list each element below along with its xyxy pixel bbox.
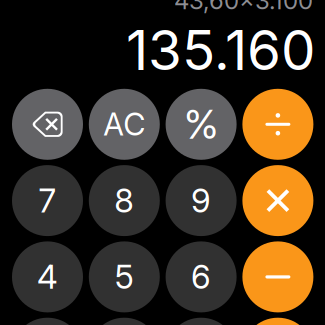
button[interactable]: Subtract	[242, 241, 313, 312]
staticText: AC	[103, 106, 145, 143]
button[interactable]: 1	[12, 318, 83, 325]
staticText: 5	[115, 257, 134, 297]
button[interactable]: 5	[89, 241, 160, 312]
button[interactable]: %	[166, 89, 237, 160]
button[interactable]: Divide	[242, 89, 313, 160]
button[interactable]: 8	[89, 165, 160, 236]
button[interactable]: 2	[89, 318, 160, 325]
button[interactable]: Multiply	[242, 165, 313, 236]
button[interactable]: 6	[166, 241, 237, 312]
button[interactable]: Add	[242, 318, 313, 325]
button[interactable]: 9	[166, 165, 237, 236]
button[interactable]: AC	[89, 89, 160, 160]
staticText: 8	[114, 181, 134, 220]
button[interactable]: Delete	[12, 89, 83, 160]
staticText: 7	[38, 181, 56, 220]
button[interactable]: 3	[166, 318, 237, 325]
button[interactable]: 4	[12, 241, 83, 312]
staticText: 4	[37, 257, 58, 297]
button[interactable]: 7	[12, 165, 83, 236]
staticText: 6	[191, 257, 211, 297]
staticText: 135.160	[126, 17, 315, 83]
staticText: %	[184, 100, 218, 148]
staticText: 43,60×3.100	[174, 0, 313, 15]
staticText: 9	[191, 181, 211, 220]
